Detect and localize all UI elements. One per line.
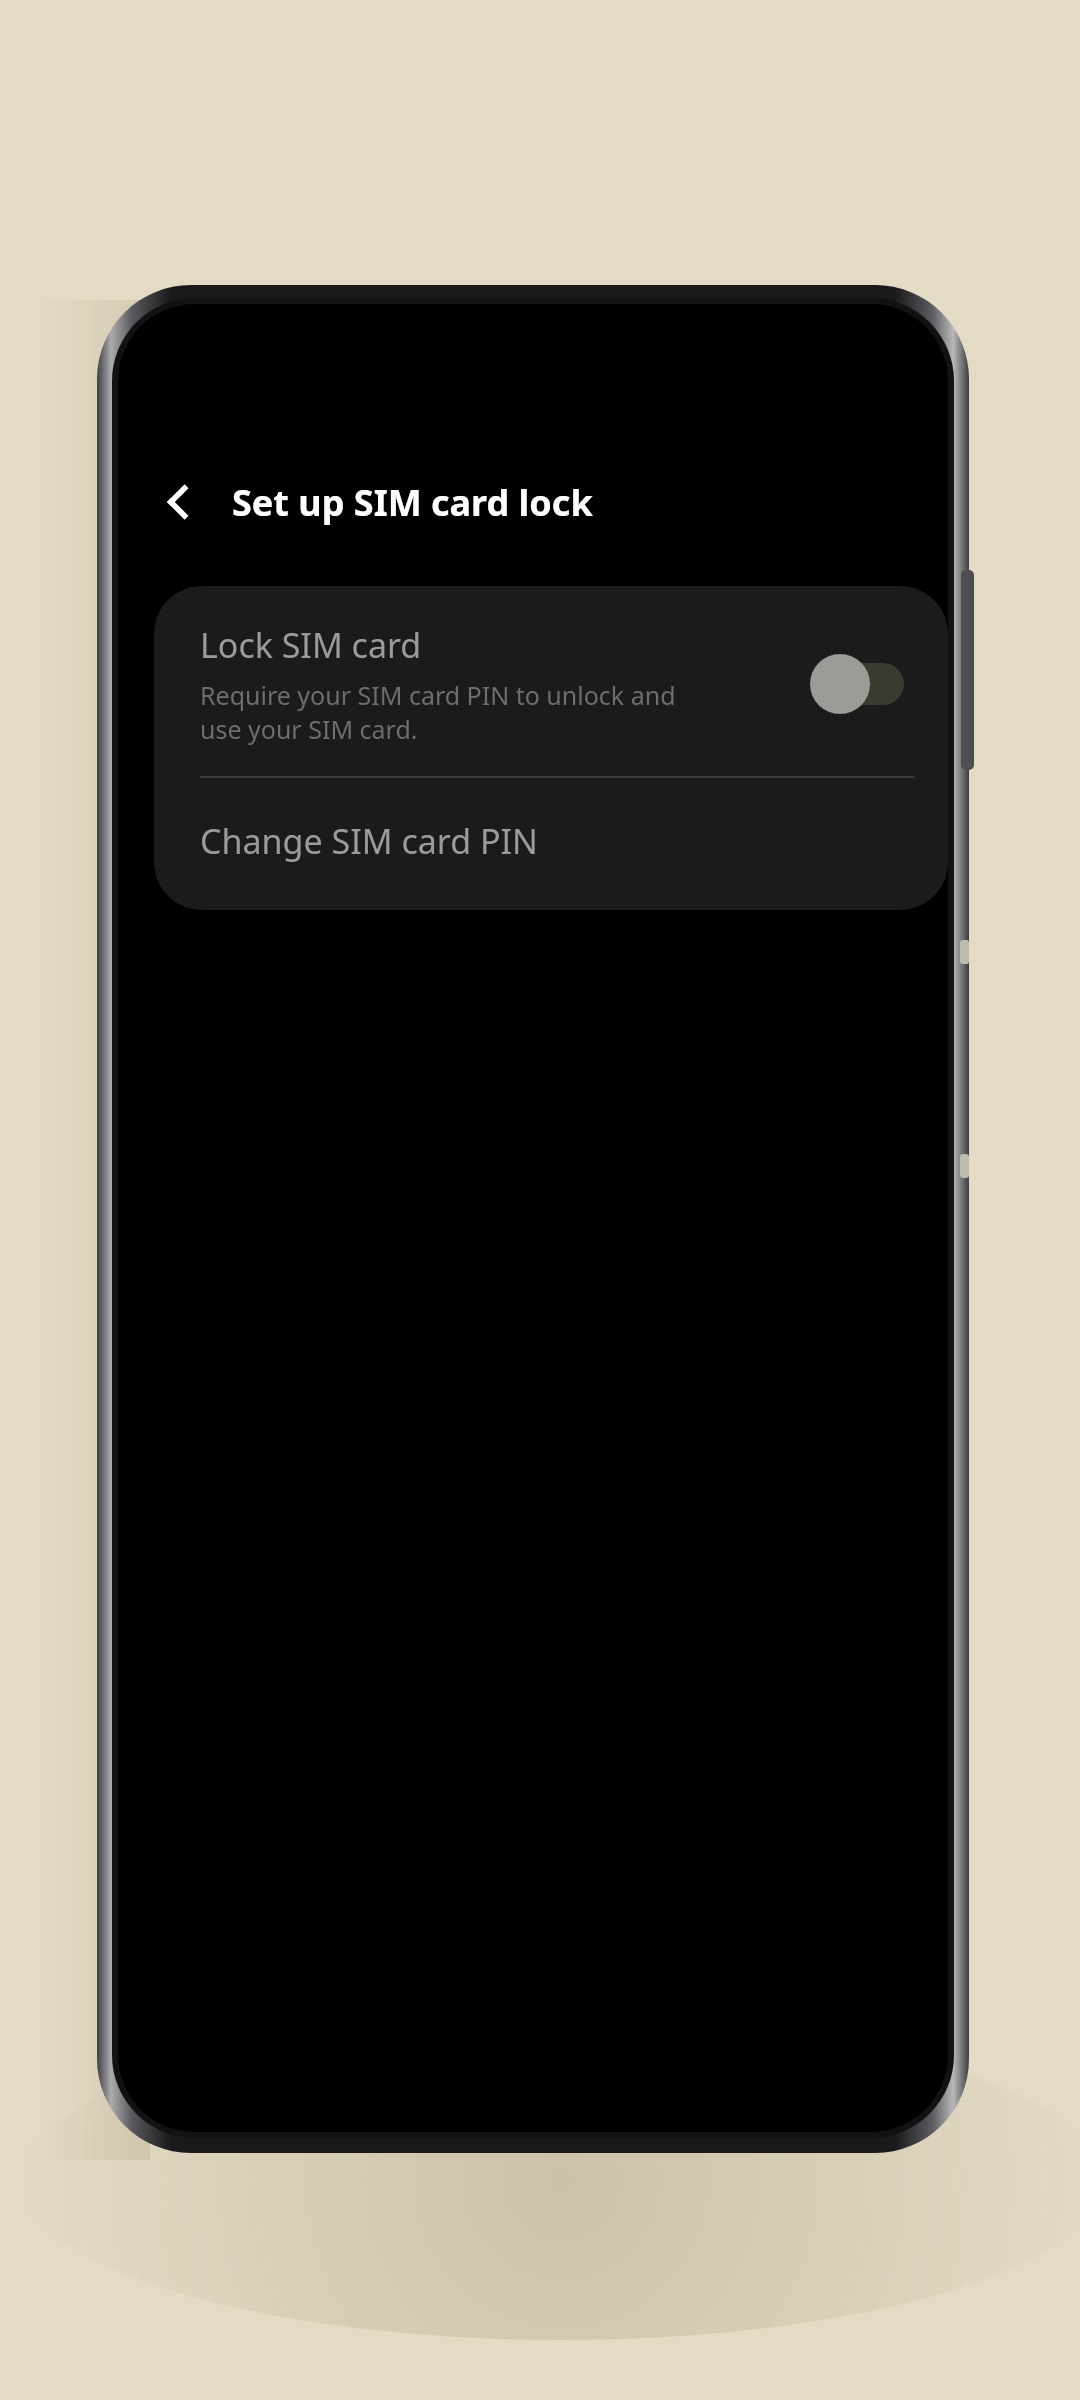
button[interactable]: Change SIM card PIN <box>154 778 948 910</box>
button[interactable]: Lock SIM card <box>154 586 948 776</box>
staticText: Set up SIM card lock <box>232 478 593 527</box>
staticText: Require your SIM card PIN to unlock and … <box>200 678 676 746</box>
staticText: Lock SIM card <box>200 622 422 668</box>
button[interactable]: Lock SIM card, off <box>810 654 904 714</box>
staticText: Change SIM card PIN <box>200 818 538 864</box>
button[interactable]: Back <box>140 463 218 541</box>
